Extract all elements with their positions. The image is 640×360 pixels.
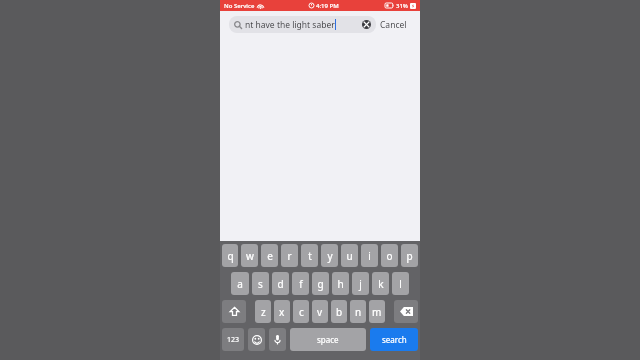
button[interactable]: g bbox=[312, 272, 329, 295]
button[interactable]: Clear text bbox=[362, 20, 371, 29]
staticText: No Service bbox=[224, 2, 255, 10]
button[interactable]: q bbox=[222, 244, 238, 267]
staticText: v bbox=[317, 305, 323, 319]
staticText: q bbox=[227, 249, 234, 263]
staticText: r bbox=[287, 249, 292, 263]
button[interactable]: search bbox=[370, 328, 418, 351]
button[interactable]: r bbox=[281, 244, 298, 267]
staticText: k bbox=[378, 277, 384, 291]
staticText: i bbox=[368, 249, 371, 263]
staticText: p bbox=[406, 249, 413, 263]
button[interactable]: x bbox=[274, 300, 290, 323]
staticText: a bbox=[237, 277, 243, 291]
button[interactable]: e bbox=[261, 244, 278, 267]
button[interactable]: a bbox=[231, 272, 249, 295]
button[interactable]: w bbox=[241, 244, 258, 267]
button[interactable]: p bbox=[401, 244, 418, 267]
staticText: x bbox=[279, 305, 285, 319]
staticText: b bbox=[336, 305, 343, 319]
button[interactable]: l bbox=[392, 272, 409, 295]
button[interactable]: k bbox=[372, 272, 389, 295]
staticText: u bbox=[346, 249, 353, 263]
button[interactable]: i bbox=[361, 244, 378, 267]
button[interactable]: h bbox=[332, 272, 349, 295]
button[interactable]: t bbox=[301, 244, 318, 267]
staticText: o bbox=[386, 249, 393, 263]
button[interactable]: z bbox=[255, 300, 271, 323]
button[interactable]: Cancel bbox=[376, 15, 411, 35]
staticText: Cancel bbox=[380, 19, 407, 31]
button[interactable]: j bbox=[352, 272, 369, 295]
button[interactable]: f bbox=[292, 272, 309, 295]
button[interactable]: c bbox=[293, 300, 309, 323]
button[interactable]: Shift bbox=[222, 300, 246, 323]
staticText: 123 bbox=[227, 335, 240, 345]
staticText: j bbox=[359, 277, 362, 291]
staticText: m bbox=[372, 305, 382, 319]
staticText: n bbox=[355, 305, 362, 319]
button[interactable]: b bbox=[331, 300, 347, 323]
staticText: e bbox=[267, 249, 273, 263]
staticText: space bbox=[317, 334, 339, 345]
staticText: y bbox=[327, 249, 333, 263]
staticText: w bbox=[246, 249, 254, 263]
staticText: nt have the light saber bbox=[245, 19, 335, 31]
button[interactable]: s bbox=[252, 272, 269, 295]
button[interactable]: Emoji bbox=[248, 328, 265, 351]
button[interactable]: y bbox=[321, 244, 338, 267]
staticText: f bbox=[299, 277, 303, 291]
button[interactable]: Backspace bbox=[394, 300, 418, 323]
staticText: l bbox=[399, 277, 402, 291]
staticText: c bbox=[299, 305, 304, 319]
button[interactable]: m bbox=[369, 300, 385, 323]
staticText: 4:19 PM bbox=[316, 2, 339, 10]
button[interactable]: o bbox=[381, 244, 398, 267]
staticText: 31% bbox=[396, 2, 408, 10]
staticText: h bbox=[337, 277, 344, 291]
button[interactable]: d bbox=[272, 272, 289, 295]
staticText: s bbox=[258, 277, 263, 291]
button[interactable]: v bbox=[312, 300, 328, 323]
staticText: g bbox=[317, 277, 324, 291]
staticText: t bbox=[308, 249, 312, 263]
button[interactable]: Dictate bbox=[269, 328, 286, 351]
staticText: d bbox=[277, 277, 284, 291]
button[interactable]: space bbox=[290, 328, 366, 351]
staticText: z bbox=[261, 305, 266, 319]
button[interactable]: u bbox=[341, 244, 358, 267]
button[interactable]: 123 bbox=[222, 328, 244, 351]
button[interactable]: n bbox=[350, 300, 366, 323]
button[interactable]: nt have the light saber bbox=[229, 16, 376, 33]
staticText: search bbox=[382, 334, 407, 345]
